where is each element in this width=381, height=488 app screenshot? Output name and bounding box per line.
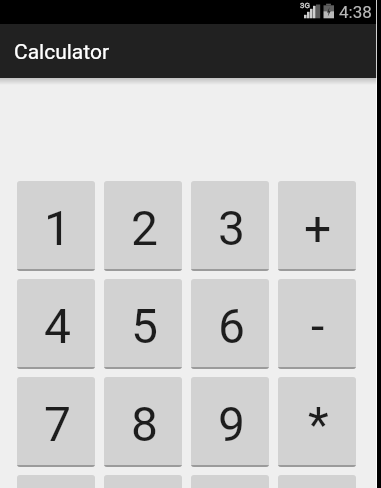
staticText: 5 [131, 298, 158, 354]
staticText: 7 [44, 396, 71, 452]
staticText: + [304, 200, 332, 256]
staticText: Calculator [14, 40, 110, 65]
staticText: 3 [218, 200, 245, 256]
button[interactable]: 3 [191, 181, 269, 271]
button[interactable]: 1 [17, 181, 95, 271]
button[interactable]: 8 [104, 377, 182, 467]
staticText: * [308, 396, 329, 452]
staticText: 3G [300, 1, 310, 10]
button[interactable]: * [278, 377, 356, 467]
staticText: 1 [44, 200, 71, 256]
staticText: 2 [131, 200, 158, 256]
staticText: 6 [218, 298, 245, 354]
button[interactable]: 7 [17, 377, 95, 467]
staticText: 9 [218, 396, 245, 452]
staticText: 4 [44, 298, 71, 354]
button[interactable]: 5 [104, 279, 182, 369]
staticText: 8 [131, 396, 158, 452]
staticText: 4:38 [339, 2, 372, 22]
button[interactable]: + [278, 181, 356, 271]
button[interactable]: 6 [191, 279, 269, 369]
button[interactable]: 2 [104, 181, 182, 271]
button[interactable]: 4 [17, 279, 95, 369]
staticText: - [311, 298, 325, 354]
button[interactable]: 9 [191, 377, 269, 467]
button[interactable]: - [278, 279, 356, 369]
